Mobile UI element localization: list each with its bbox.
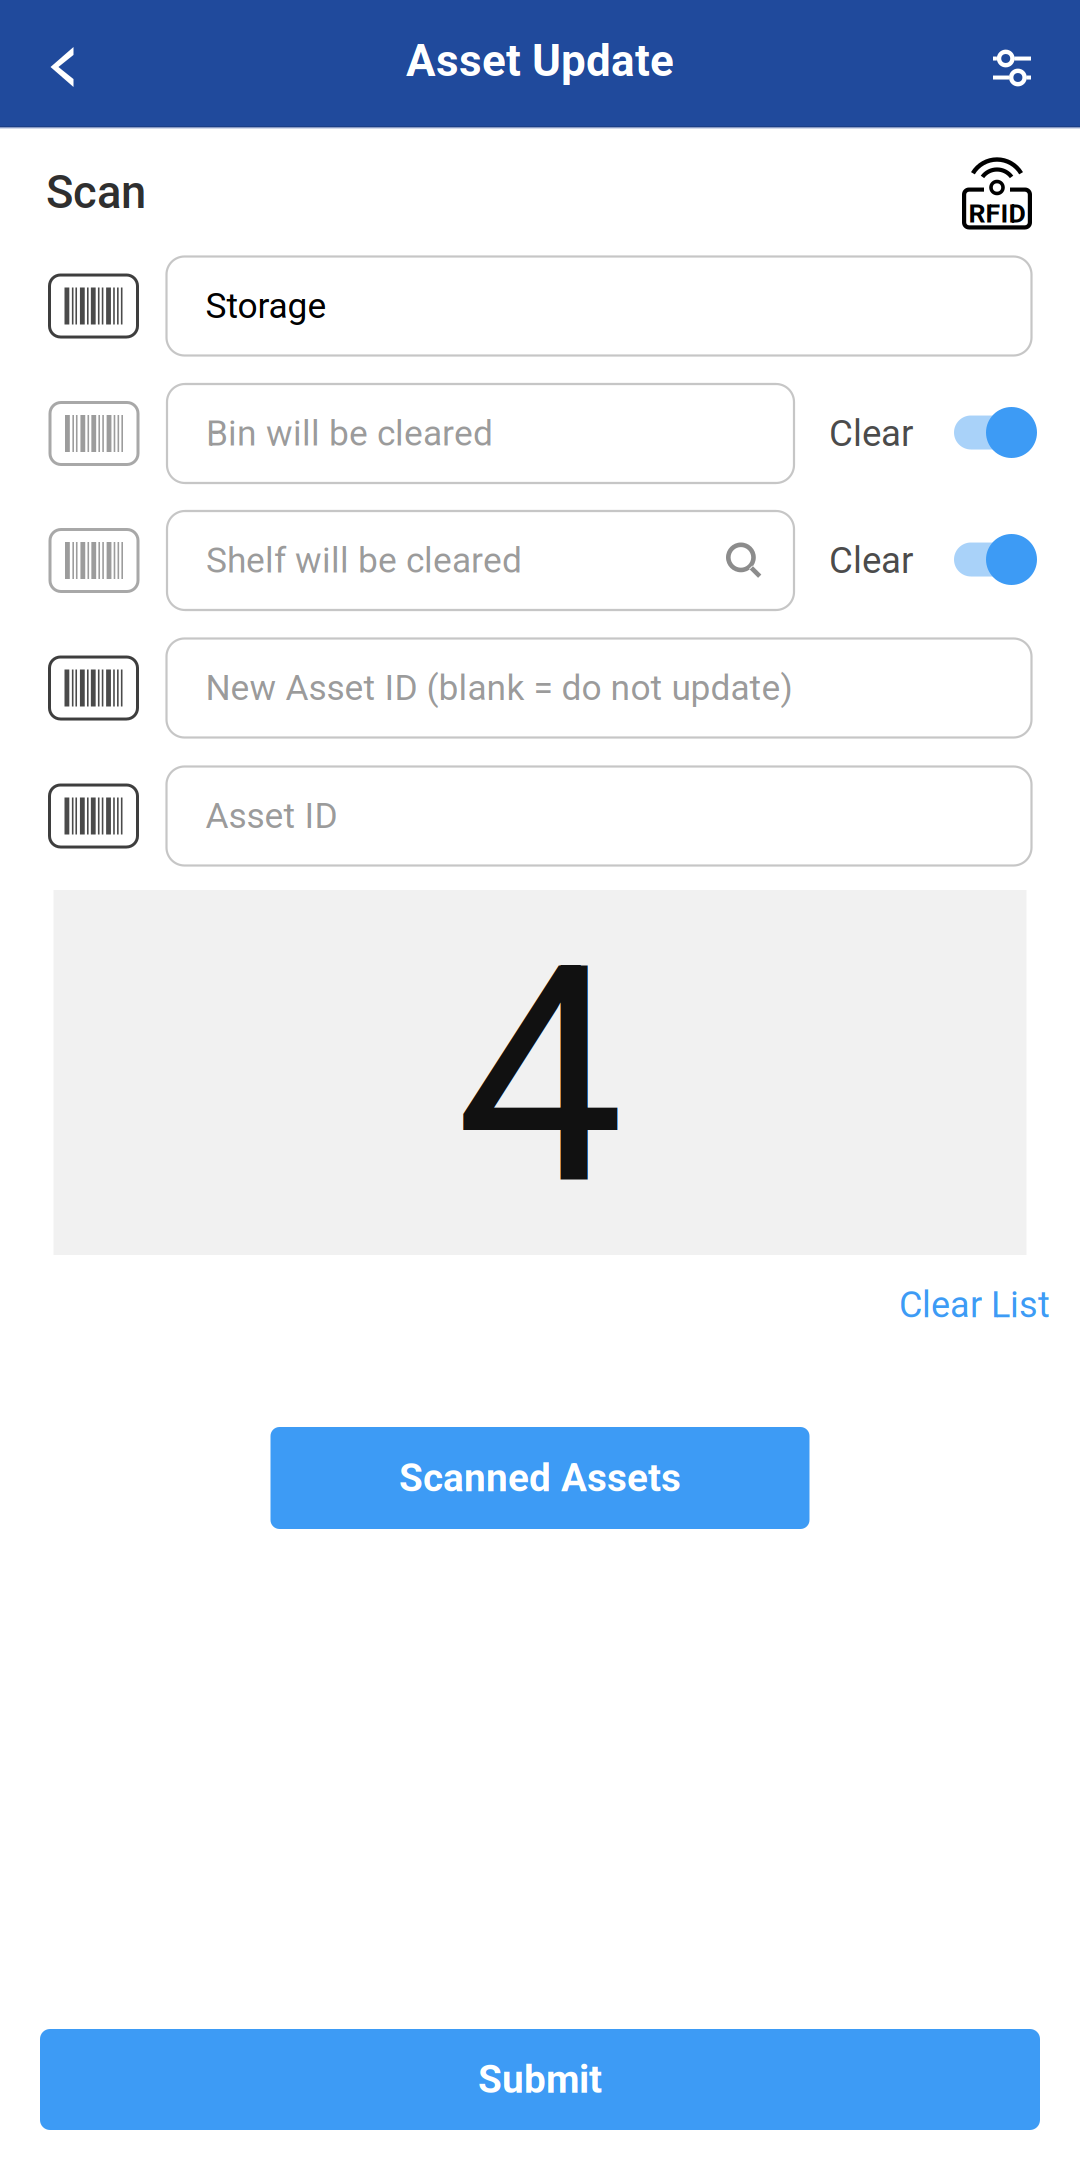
- button[interactable]: RFID scan: [962, 149, 1032, 221]
- staticText: Scanned Assets: [399, 1455, 681, 1501]
- button[interactable]: Back: [0, 0, 112, 127]
- staticText: New Asset ID (blank = do not update): [205, 667, 792, 709]
- button[interactable]: Scan barcode: [50, 402, 138, 464]
- staticText: Shelf will be cleared: [206, 540, 522, 581]
- button[interactable]: Clear List: [869, 1262, 1080, 1348]
- button[interactable]: Clear toggle: [948, 530, 1031, 590]
- button[interactable]: Scanned Assets: [270, 1427, 809, 1529]
- staticText: Scan: [46, 166, 146, 219]
- staticText: Clear: [829, 412, 913, 455]
- staticText: Asset ID: [205, 795, 337, 837]
- button[interactable]: Scan barcode: [49, 657, 137, 719]
- button[interactable]: Submit: [40, 2029, 1040, 2130]
- staticText: Submit: [478, 2057, 602, 2102]
- button[interactable]: Filter settings: [962, 0, 1080, 127]
- staticText: RFID: [968, 198, 1025, 229]
- button[interactable]: Scan barcode: [49, 275, 137, 337]
- staticText: 4: [455, 902, 624, 1253]
- staticText: Asset Update: [406, 35, 674, 87]
- staticText: Storage: [205, 285, 326, 327]
- staticText: Clear: [829, 539, 913, 582]
- staticText: Clear List: [899, 1284, 1050, 1326]
- button[interactable]: Scan barcode: [50, 529, 138, 591]
- button[interactable]: Scan barcode: [49, 785, 137, 847]
- staticText: Bin will be cleared: [206, 413, 493, 454]
- button[interactable]: Clear toggle: [948, 403, 1031, 463]
